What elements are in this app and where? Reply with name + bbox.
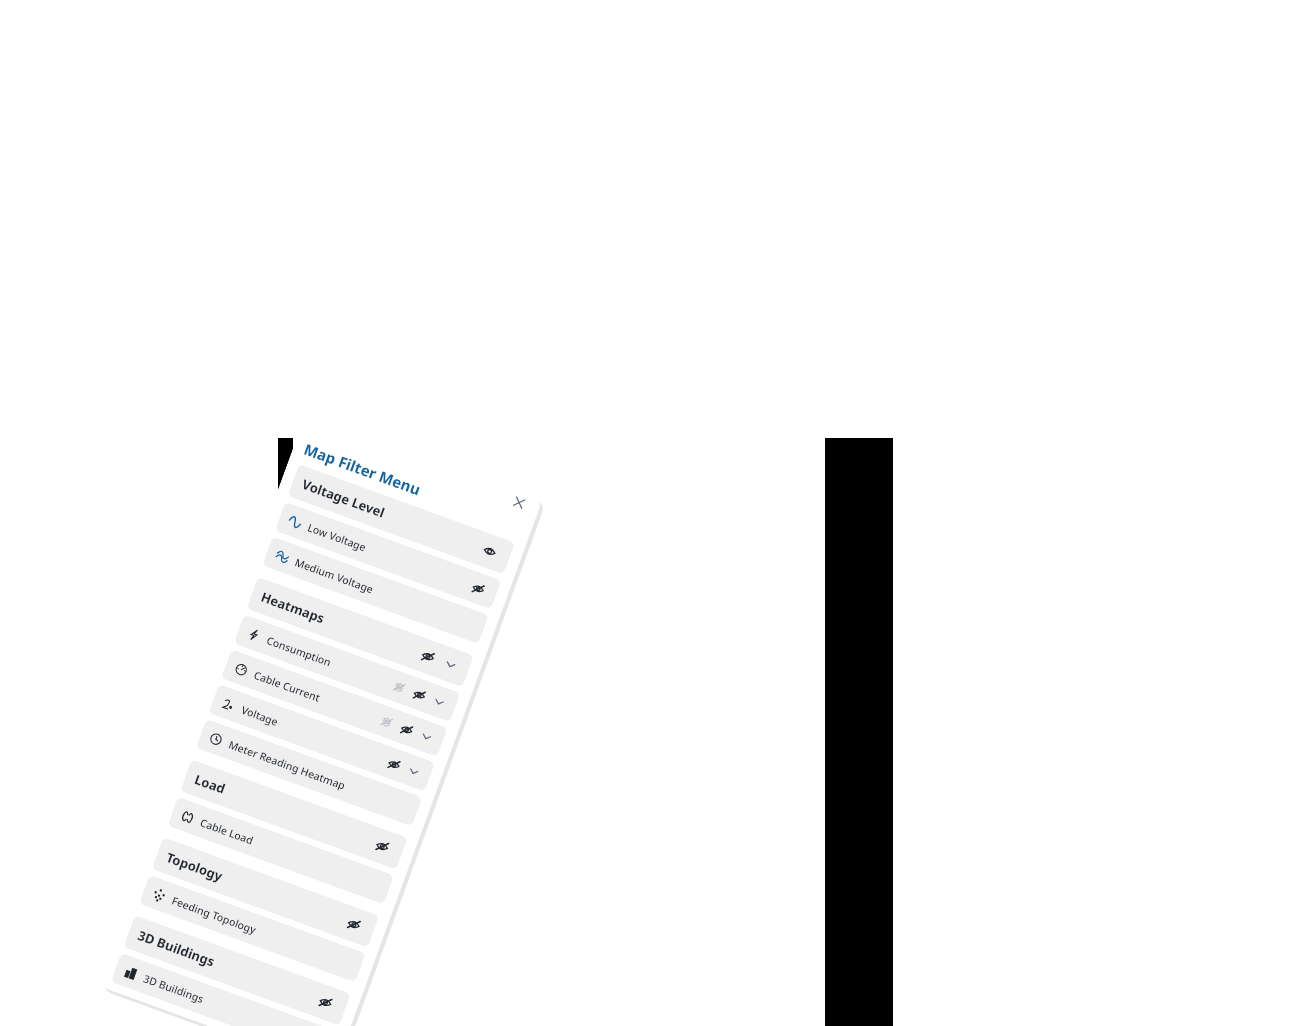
button[interactable]: Show Voltage Level: [475, 537, 504, 566]
button[interactable]: Hide Load: [368, 832, 396, 861]
button[interactable]: Hide Topology: [340, 910, 368, 939]
staticText: Consumption: [265, 633, 333, 669]
button[interactable]: 3D Buildings: [111, 953, 337, 1026]
staticText: Meter Reading Heatmap: [227, 737, 348, 793]
button[interactable]: Expand Heatmaps: [439, 653, 462, 676]
staticText: Cable Load: [198, 815, 256, 848]
button[interactable]: Consumption: [234, 614, 460, 722]
button[interactable]: Hide Low Voltage: [465, 576, 491, 602]
button[interactable]: Cable Load: [167, 797, 394, 904]
button[interactable]: Low Voltage: [275, 502, 501, 609]
button[interactable]: Feeding Topology: [139, 875, 366, 982]
button[interactable]: Voltage Level: [287, 464, 515, 575]
button[interactable]: Hide 3D Buildings: [311, 988, 340, 1017]
staticText: Voltage Level: [300, 475, 387, 522]
staticText: Voltage: [239, 703, 281, 729]
button[interactable]: Load: [180, 759, 408, 870]
button[interactable]: 3D Buildings: [123, 915, 351, 1026]
button[interactable]: Layer options for Consumption: [388, 676, 410, 698]
staticText: Cable Current: [252, 668, 323, 705]
button[interactable]: Expand Consumption: [429, 692, 449, 712]
button[interactable]: Hide Consumption: [406, 682, 432, 708]
button[interactable]: Expand Cable Current: [416, 727, 437, 747]
staticText: Heatmaps: [258, 588, 328, 627]
button[interactable]: Heatmaps: [246, 577, 474, 687]
staticText: Feeding Topology: [170, 893, 258, 937]
button[interactable]: Voltage: [208, 684, 435, 792]
button[interactable]: Medium Voltage: [262, 536, 489, 644]
staticText: 3D Buildings: [141, 971, 206, 1006]
staticText: Low Voltage: [306, 520, 369, 555]
staticText: Topology: [164, 848, 225, 885]
button[interactable]: Hide Cable Current: [394, 717, 419, 743]
staticText: Medium Voltage: [293, 555, 376, 597]
button[interactable]: Cable Current: [221, 649, 448, 757]
button[interactable]: Close: [506, 490, 532, 515]
button[interactable]: Expand Voltage: [403, 761, 424, 782]
button[interactable]: Meter Reading Heatmap: [196, 719, 422, 826]
button[interactable]: Hide Voltage: [381, 752, 407, 777]
staticText: 3D Buildings: [135, 926, 218, 971]
button[interactable]: Layer options for Cable Current: [376, 711, 397, 733]
staticText: Map Filter Menu: [301, 439, 424, 499]
button[interactable]: Hide Heatmaps: [414, 643, 442, 671]
button[interactable]: Topology: [152, 837, 379, 948]
staticText: Load: [192, 770, 228, 798]
